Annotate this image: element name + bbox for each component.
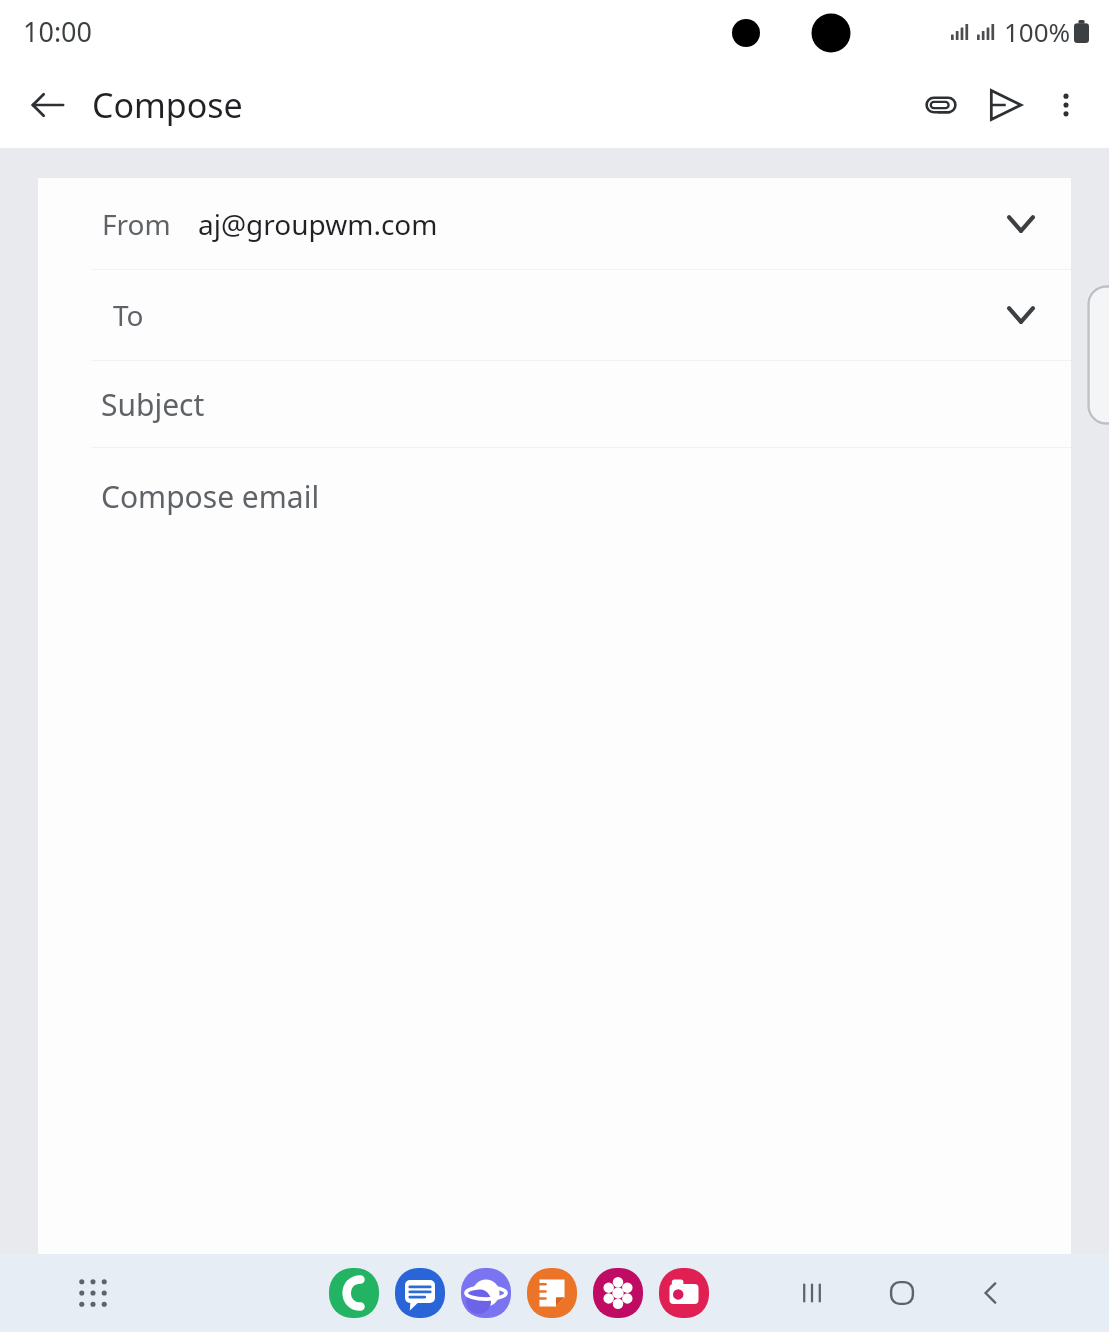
staticText: 10:00	[23, 13, 93, 50]
button[interactable]: Home	[871, 1262, 933, 1324]
button[interactable]: Back	[20, 77, 76, 133]
button[interactable]: Attach file	[909, 73, 973, 137]
button[interactable]: Phone	[329, 1268, 379, 1318]
staticText: 100%	[1004, 14, 1071, 49]
staticText: Subject	[101, 384, 205, 425]
button[interactable]: From	[38, 178, 1071, 269]
button[interactable]: Subject	[38, 361, 1071, 447]
button[interactable]: Apps	[62, 1262, 124, 1324]
button[interactable]: Back	[961, 1262, 1023, 1324]
button[interactable]: Gallery	[593, 1268, 643, 1318]
staticText: To	[113, 296, 144, 334]
staticText: From	[102, 205, 171, 243]
staticText: aj@groupwm.com	[198, 205, 438, 243]
button[interactable]: Camera	[659, 1268, 709, 1318]
button[interactable]: Internet	[461, 1268, 511, 1318]
staticText: Compose	[92, 82, 243, 128]
button[interactable]: To	[38, 270, 1071, 360]
button[interactable]: Compose email	[38, 448, 1071, 1254]
button[interactable]: Messages	[395, 1268, 445, 1318]
button[interactable]: Notes	[527, 1268, 577, 1318]
staticText: Compose email	[101, 476, 320, 517]
button[interactable]: More options	[1037, 76, 1095, 134]
button[interactable]: Send	[973, 73, 1037, 137]
button[interactable]: Recents	[781, 1262, 843, 1324]
